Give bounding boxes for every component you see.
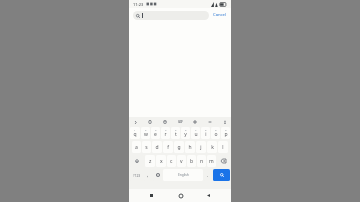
staticText: a (135, 144, 138, 151)
button[interactable]: Backspace (217, 155, 230, 167)
button[interactable]: 1 (130, 127, 140, 139)
button[interactable]: z (145, 155, 155, 167)
staticText: k (211, 144, 214, 151)
button[interactable]: Cancel (212, 10, 228, 20)
button[interactable]: Period (204, 169, 212, 181)
staticText: , (147, 172, 149, 178)
button[interactable]: Expand toolbar (132, 119, 138, 125)
staticText: 4 (165, 128, 167, 131)
button[interactable]: Voice input (221, 118, 228, 125)
button[interactable]: v (177, 155, 186, 167)
button[interactable]: Stickers (161, 118, 168, 125)
staticText: y (184, 131, 187, 138)
staticText: g (177, 144, 181, 151)
staticText: l (222, 144, 224, 151)
button[interactable]: Shift (130, 155, 144, 167)
button[interactable]: j (196, 141, 206, 153)
button[interactable]: 7 (191, 127, 200, 139)
button[interactable]: Switch language (153, 169, 162, 181)
staticText: b (190, 158, 194, 165)
button[interactable]: Home (176, 191, 185, 200)
button[interactable]: m (207, 155, 216, 167)
staticText: n (200, 158, 204, 165)
button[interactable]: k (207, 141, 217, 153)
button[interactable]: c (167, 155, 176, 167)
button[interactable]: x (156, 155, 166, 167)
staticText: c (170, 158, 173, 165)
button[interactable]: Recent apps (147, 191, 156, 200)
button[interactable] (133, 11, 209, 20)
staticText: i (205, 131, 207, 138)
staticText: s (145, 144, 148, 151)
staticText: z (149, 158, 152, 165)
staticText: q (133, 131, 137, 138)
staticText: o (214, 131, 218, 138)
button[interactable]: 6 (181, 127, 190, 139)
staticText: 6 (185, 128, 187, 131)
button[interactable]: Comma (144, 169, 152, 181)
button[interactable]: 4 (161, 127, 170, 139)
button[interactable]: 5 (171, 127, 180, 139)
staticText: t (175, 131, 177, 138)
staticText: v (180, 158, 183, 165)
button[interactable]: f (163, 141, 173, 153)
button[interactable]: 2 (141, 127, 150, 139)
staticText: 1 (134, 128, 136, 131)
button[interactable]: b (187, 155, 196, 167)
button[interactable]: Clipboard (146, 118, 153, 125)
staticText: r (164, 131, 167, 138)
staticText: 3 (155, 128, 157, 131)
staticText: 0 (225, 128, 227, 131)
staticText: h (188, 144, 192, 151)
button[interactable]: English (163, 169, 203, 181)
staticText: ?123 (133, 173, 141, 178)
button[interactable]: ?123 (130, 169, 143, 181)
button[interactable]: More options (206, 118, 213, 125)
button[interactable]: l (218, 141, 228, 153)
button[interactable]: Back (204, 191, 213, 200)
staticText: e (154, 131, 157, 138)
staticText: x (160, 158, 163, 165)
button[interactable]: a (132, 141, 141, 153)
staticText: u (194, 131, 198, 138)
button[interactable]: 8 (201, 127, 210, 139)
staticText: f (167, 144, 169, 151)
staticText: 2 (145, 128, 147, 131)
staticText: m (209, 158, 214, 165)
staticText: . (207, 172, 209, 178)
button[interactable]: 9 (211, 127, 220, 139)
button[interactable]: 3 (151, 127, 160, 139)
button[interactable]: s (142, 141, 151, 153)
button[interactable]: Settings (191, 118, 198, 125)
staticText: p (224, 131, 228, 138)
button[interactable]: 0 (221, 127, 230, 139)
staticText: 11:23 (133, 2, 144, 7)
staticText: 7 (195, 128, 197, 131)
button[interactable]: n (197, 155, 206, 167)
staticText: Cancel (213, 12, 227, 18)
button[interactable]: GIF (176, 119, 184, 125)
button[interactable]: g (174, 141, 184, 153)
staticText: 9 (215, 128, 217, 131)
button[interactable]: Search (213, 169, 230, 181)
staticText: 5 (175, 128, 177, 131)
staticText: English (178, 173, 189, 177)
staticText: 8 (205, 128, 207, 131)
button[interactable]: h (185, 141, 195, 153)
staticText: GIF (178, 120, 183, 124)
button[interactable]: d (152, 141, 162, 153)
staticText: w (144, 131, 148, 138)
staticText: d (155, 144, 159, 151)
staticText: j (200, 144, 202, 151)
